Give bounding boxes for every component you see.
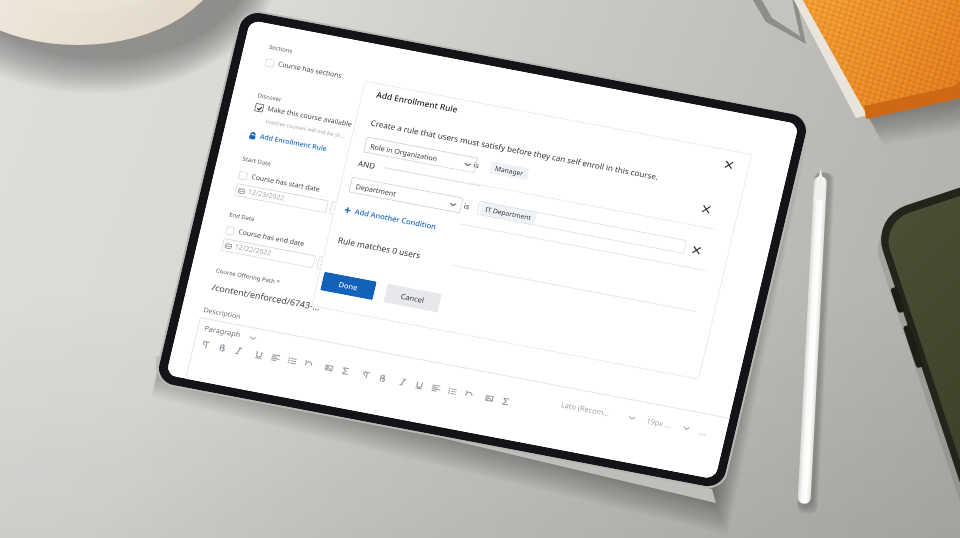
button[interactable]: Formatting tool bbox=[195, 334, 215, 353]
staticText: ... bbox=[698, 425, 708, 438]
staticText: AND bbox=[357, 157, 377, 171]
staticText: Start Date bbox=[242, 155, 272, 168]
staticText: Rule matches 0 users bbox=[337, 234, 422, 261]
staticText: Course Offering Path * bbox=[215, 267, 281, 286]
button[interactable]: Cancel bbox=[383, 284, 442, 313]
button[interactable]: 19px ... bbox=[646, 416, 685, 432]
staticText: Create a rule that users must satisfy be… bbox=[370, 117, 660, 182]
staticText: Manager bbox=[494, 164, 524, 178]
staticText: 19px ... bbox=[646, 416, 672, 430]
button[interactable]: Formatting tool bbox=[458, 384, 479, 403]
staticText: Description bbox=[203, 305, 242, 322]
button[interactable]: Formatting tool bbox=[228, 341, 248, 360]
button[interactable]: Remove condition bbox=[690, 244, 703, 256]
button[interactable]: Formatting tool bbox=[319, 358, 339, 377]
button[interactable]: Formatting tool bbox=[265, 348, 285, 367]
staticText: Course has end date bbox=[237, 227, 306, 249]
staticText: Done bbox=[338, 279, 359, 292]
button[interactable]: Make this course available bbox=[254, 101, 353, 130]
button[interactable]: Formatting tool bbox=[409, 375, 429, 394]
staticText: Add Another Condition bbox=[354, 206, 438, 231]
staticText: Paragraph bbox=[203, 323, 242, 339]
button[interactable]: Manager bbox=[486, 160, 697, 213]
button[interactable]: Lato (Recom... bbox=[560, 400, 630, 422]
staticText: Make this course available bbox=[266, 104, 353, 130]
button[interactable]: Remove condition bbox=[700, 203, 713, 215]
button[interactable]: Formatting tool bbox=[479, 388, 499, 407]
button[interactable]: Department bbox=[348, 176, 464, 214]
button[interactable]: Done bbox=[320, 272, 377, 300]
button[interactable]: Formatting tool bbox=[355, 365, 376, 384]
staticText: IT Department bbox=[484, 205, 532, 222]
button[interactable]: IT Department bbox=[476, 201, 687, 254]
staticText: 12/22/2022 bbox=[234, 242, 273, 258]
staticText: Role in Organization bbox=[369, 141, 439, 163]
button[interactable]: Add Another Condition bbox=[343, 204, 438, 231]
staticText: 2:01 ... bbox=[332, 203, 356, 217]
button[interactable]: Course has end date bbox=[224, 224, 306, 250]
staticText: is bbox=[473, 160, 481, 170]
button[interactable]: Remove condition bbox=[722, 159, 735, 171]
staticText: Course has start date bbox=[250, 172, 322, 195]
staticText: Add Enrollment Rule bbox=[375, 89, 459, 116]
staticText: Lato (Recom... bbox=[560, 400, 611, 418]
button[interactable]: Formatting tool bbox=[249, 345, 269, 364]
staticText: Sections bbox=[268, 43, 293, 55]
staticText: Inactive courses will not be sh... bbox=[265, 117, 346, 139]
button[interactable]: Formatting tool bbox=[495, 391, 516, 410]
button[interactable]: Formatting tool bbox=[372, 368, 392, 387]
button[interactable]: Formatting tool bbox=[282, 351, 302, 370]
button[interactable]: Formatting tool bbox=[392, 372, 413, 391]
staticText: End Date bbox=[228, 211, 255, 223]
staticText: Discover bbox=[257, 91, 283, 104]
button[interactable]: Formatting tool bbox=[298, 354, 318, 373]
staticText: 12/23/2022 bbox=[247, 187, 286, 203]
button[interactable]: Course has start date bbox=[237, 169, 322, 196]
button[interactable]: Formatting tool bbox=[335, 361, 355, 380]
button[interactable]: Course has sections bbox=[264, 56, 344, 82]
staticText: /content/enforced/6743-... bbox=[211, 281, 321, 312]
button[interactable]: Add Enrollment Rule bbox=[247, 130, 328, 154]
staticText: is bbox=[463, 201, 471, 211]
button[interactable]: Role in Organization bbox=[363, 136, 478, 173]
staticText: Cancel bbox=[400, 291, 425, 305]
staticText: Add Enrollment Rule bbox=[259, 132, 328, 154]
button[interactable]: Formatting tool bbox=[212, 338, 232, 357]
staticText: 2:05 ... bbox=[319, 258, 343, 272]
button[interactable]: Formatting tool bbox=[442, 381, 462, 400]
staticText: Department bbox=[355, 181, 398, 198]
button[interactable]: Formatting tool bbox=[425, 378, 446, 397]
staticText: Course has sections bbox=[277, 59, 343, 81]
